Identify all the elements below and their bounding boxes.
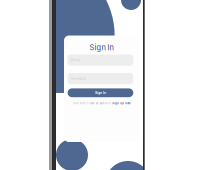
- staticText: Sign up here: [112, 102, 130, 105]
- button[interactable]: You don't have an account?: [64, 101, 139, 105]
- button[interactable]: Sign In: [68, 88, 133, 97]
- staticText: Password: [71, 77, 86, 80]
- staticText: Sign In: [89, 43, 113, 52]
- staticText: You don't have an account?: [73, 102, 111, 105]
- staticText: Phone: [71, 58, 81, 62]
- staticText: Sign In: [95, 91, 106, 95]
